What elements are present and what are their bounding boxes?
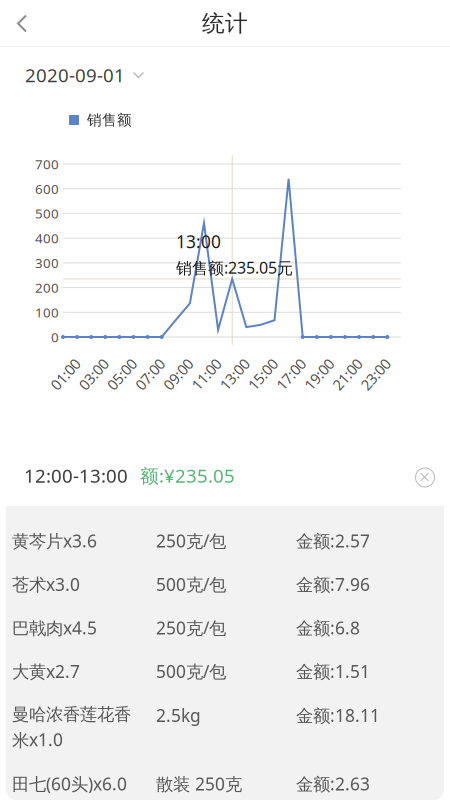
staticText: 600 [35, 180, 59, 198]
staticText: 100 [35, 303, 59, 321]
staticText: 金额:18.11 [296, 704, 380, 727]
staticText: 09:00 [162, 368, 198, 388]
staticText: 300 [35, 254, 59, 272]
staticText: 200 [35, 279, 59, 296]
staticText: 500 [35, 205, 59, 222]
staticText: 金额:2.63 [296, 772, 370, 795]
staticText: 500克/包 [156, 660, 226, 683]
staticText: 金额:7.96 [296, 573, 370, 596]
staticText: 13:00 [218, 368, 254, 388]
staticText: 2.5kg [156, 704, 201, 727]
staticText: 17:00 [275, 368, 311, 388]
staticText: 23:00 [359, 368, 395, 388]
staticText: 额:¥235.05 [140, 463, 235, 488]
staticText: 大黄x2.7 [12, 660, 80, 683]
staticText: 销售额:235.05元 [176, 257, 293, 278]
staticText: 01:00 [49, 368, 85, 388]
staticText: 500克/包 [156, 573, 226, 596]
staticText: 12:00-13:00 [24, 463, 128, 488]
staticText: 田七(60头)x6.0 [12, 772, 127, 795]
staticText: 07:00 [134, 368, 170, 388]
staticText: 黄芩片x3.6 [12, 529, 97, 552]
staticText: 250克/包 [156, 616, 226, 639]
staticText: 400 [35, 229, 59, 247]
staticText: 03:00 [77, 368, 113, 388]
staticText: 05:00 [105, 368, 141, 388]
staticText: 250克/包 [156, 529, 226, 552]
staticText: 金额:6.8 [296, 616, 360, 639]
staticText: 19:00 [303, 368, 339, 388]
staticText: 700 [35, 155, 59, 173]
staticText: 金额:2.57 [296, 529, 370, 552]
staticText: 销售额 [87, 111, 132, 129]
staticText: 21:00 [331, 368, 367, 388]
staticText: 苍术x3.0 [12, 573, 80, 596]
staticText: 13:00 [176, 230, 221, 253]
button[interactable]: 2020-09-01 [0, 58, 250, 92]
staticText: 曼哈浓香莲花香米x1.0 [12, 704, 131, 751]
button[interactable]: 返回 [0, 0, 54, 47]
staticText: 0 [51, 328, 59, 346]
staticText: 巴戟肉x4.5 [12, 616, 97, 639]
staticText: 11:00 [190, 368, 226, 388]
staticText: 金额:1.51 [296, 660, 370, 683]
staticText: 散装 250克 [156, 772, 242, 795]
staticText: 2020-09-01 [25, 63, 125, 87]
staticText: 统计 [202, 10, 248, 37]
staticText: 15:00 [246, 368, 282, 388]
button[interactable]: 关闭 [400, 453, 444, 497]
